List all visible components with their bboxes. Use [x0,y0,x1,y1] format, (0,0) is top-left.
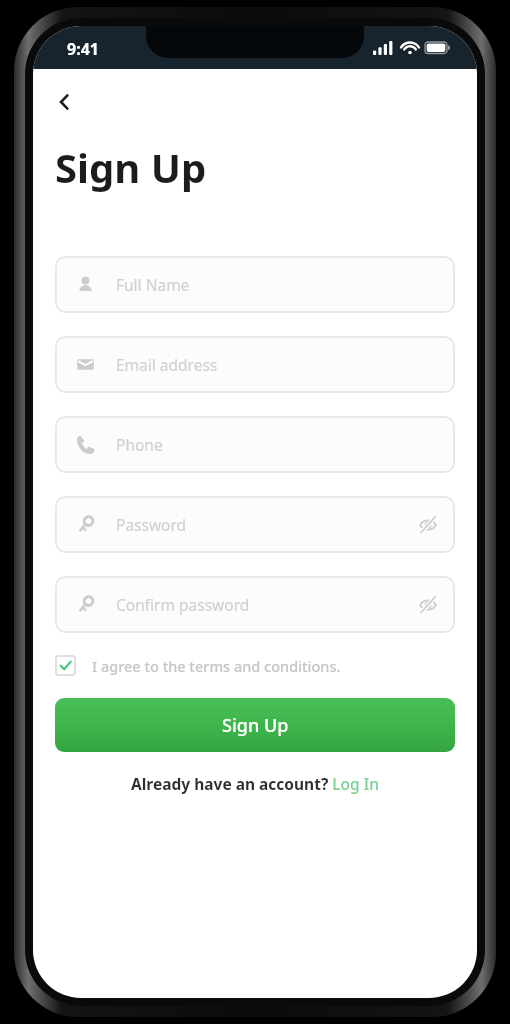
button[interactable]: Back [45,82,85,122]
button[interactable]: Email address [55,336,455,393]
button[interactable]: Full Name [55,256,455,313]
button[interactable]: Password [55,496,455,553]
staticText: Password [116,514,187,535]
staticText: Phone [116,434,163,455]
staticText: Already have an account? Log In [131,773,379,794]
staticText: 9:41 [67,38,99,60]
button[interactable]: Already have an account? Log In [131,773,379,794]
button[interactable]: I agree to the terms and conditions. [55,655,341,676]
button[interactable]: Toggle password visibility [411,508,445,542]
button[interactable]: Toggle password visibility [411,588,445,622]
staticText: Confirm password [116,594,250,615]
staticText: Sign Up [55,140,207,194]
staticText: Full Name [116,274,190,295]
staticText: I agree to the terms and conditions. [92,656,341,676]
staticText: Email address [116,354,218,375]
button[interactable]: Phone [55,416,455,473]
staticText: Sign Up [222,713,289,738]
button[interactable]: Confirm password [55,576,455,633]
button[interactable]: Sign Up [55,698,455,752]
